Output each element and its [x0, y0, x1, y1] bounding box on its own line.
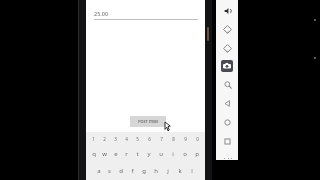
staticText: 4: [125, 136, 128, 142]
button[interactable]: 6: [143, 133, 155, 145]
staticText: g: [142, 167, 146, 175]
button[interactable]: 1: [88, 133, 99, 145]
staticText: f: [131, 167, 134, 175]
staticText: w: [102, 150, 107, 158]
staticText: 7: [160, 136, 163, 142]
button[interactable]: Back: [222, 98, 233, 109]
staticText: r: [125, 150, 128, 158]
staticText: 8: [172, 136, 175, 142]
staticText: y: [147, 150, 151, 158]
button[interactable]: l: [186, 162, 198, 179]
button[interactable]: w: [99, 145, 110, 162]
button[interactable]: 8: [167, 133, 179, 145]
button[interactable]: p: [191, 145, 203, 162]
staticText: j: [167, 167, 169, 175]
button[interactable]: 0: [191, 133, 203, 145]
button[interactable]: g: [138, 162, 150, 179]
button[interactable]: y: [143, 145, 155, 162]
button[interactable]: f: [126, 162, 138, 179]
button[interactable]: 4: [121, 133, 132, 145]
button[interactable]: 5: [132, 133, 143, 145]
staticText: 0: [196, 136, 199, 142]
staticText: a: [97, 167, 101, 175]
button[interactable]: o: [179, 145, 191, 162]
staticText: l: [191, 167, 193, 175]
button[interactable]: Volume: [222, 5, 233, 16]
button[interactable]: Take screenshot: [221, 60, 233, 72]
button[interactable]: h: [150, 162, 162, 179]
staticText: 9: [184, 136, 187, 142]
staticText: h: [154, 167, 158, 175]
staticText: t: [136, 150, 139, 158]
button[interactable]: Rotate left: [222, 24, 233, 35]
button[interactable]: Home: [222, 117, 233, 128]
staticText: POST ITEM: [138, 119, 158, 124]
button[interactable]: j: [162, 162, 174, 179]
button[interactable]: Rotate right: [222, 43, 233, 54]
staticText: e: [114, 150, 118, 158]
button[interactable]: d: [115, 162, 126, 179]
button[interactable]: 2: [99, 133, 110, 145]
button[interactable]: t: [132, 145, 143, 162]
button[interactable]: a: [93, 162, 104, 179]
staticText: 2: [103, 136, 106, 142]
staticText: i: [172, 150, 174, 158]
button[interactable]: More: [222, 157, 233, 160]
button[interactable]: s: [104, 162, 115, 179]
button[interactable]: i: [167, 145, 179, 162]
button[interactable]: r: [121, 145, 132, 162]
staticText: 6: [148, 136, 151, 142]
staticText: u: [159, 150, 163, 158]
button[interactable]: Zoom: [222, 79, 233, 90]
staticText: q: [92, 150, 96, 158]
button[interactable]: q: [88, 145, 99, 162]
button[interactable]: e: [110, 145, 121, 162]
button[interactable]: POST ITEM: [130, 116, 166, 127]
staticText: 25.00: [94, 10, 109, 17]
staticText: s: [108, 167, 111, 175]
staticText: 5: [136, 136, 139, 142]
button[interactable]: 7: [155, 133, 167, 145]
staticText: p: [195, 150, 199, 158]
button[interactable]: 9: [179, 133, 191, 145]
button[interactable]: 3: [110, 133, 121, 145]
staticText: k: [178, 167, 182, 175]
staticText: 3: [114, 136, 117, 142]
button[interactable]: u: [155, 145, 167, 162]
staticText: 1: [92, 136, 95, 142]
button[interactable]: Recent apps: [222, 136, 233, 147]
button[interactable]: 25.00: [94, 10, 198, 20]
staticText: o: [183, 150, 187, 158]
staticText: d: [119, 167, 123, 175]
button[interactable]: k: [174, 162, 186, 179]
